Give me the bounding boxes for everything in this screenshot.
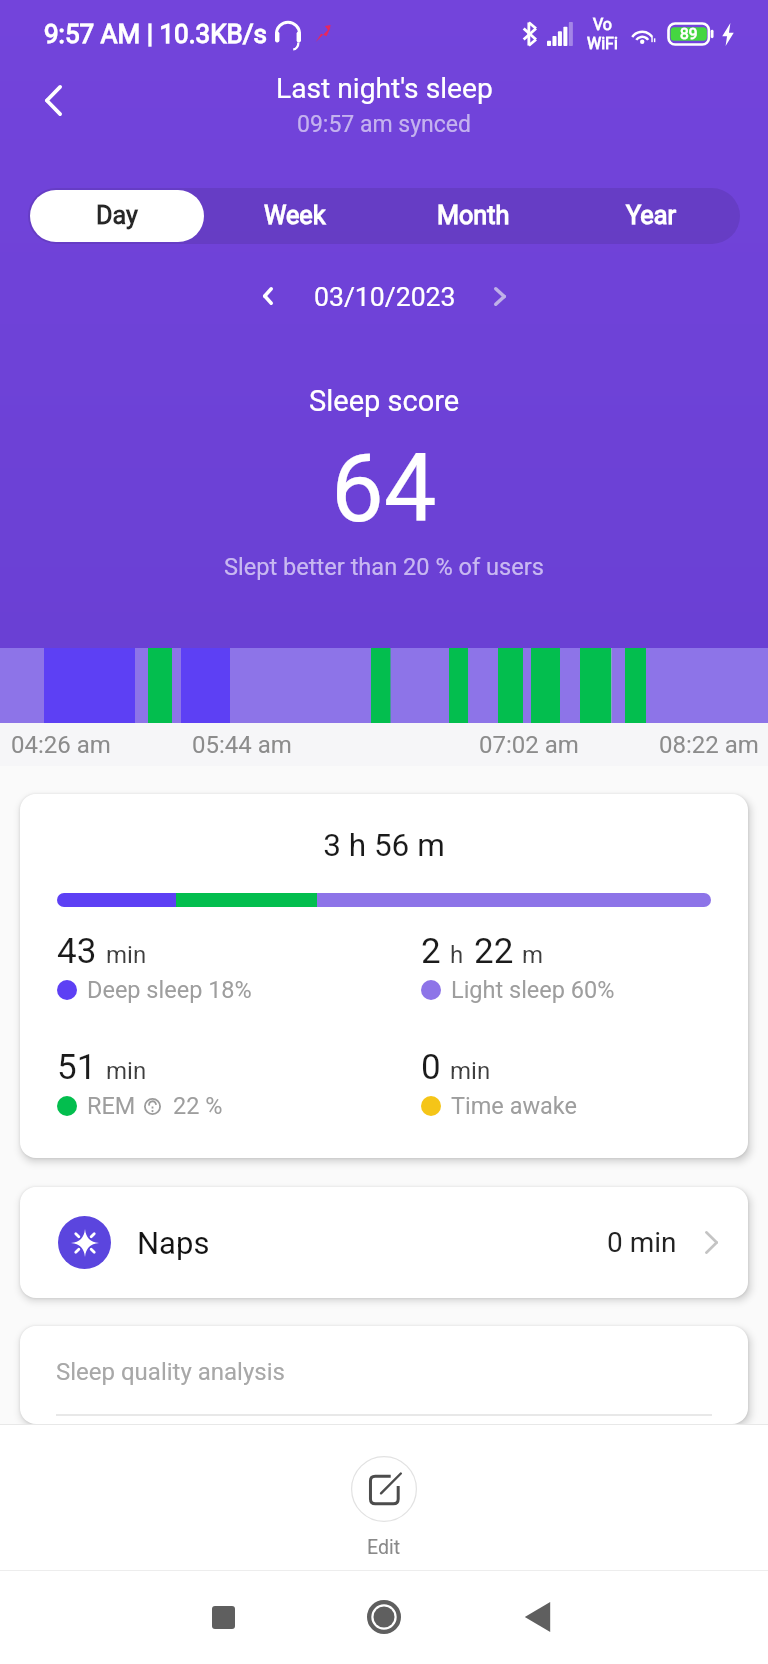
button[interactable]: Day xyxy=(30,190,204,242)
button[interactable]: Month xyxy=(386,190,560,242)
staticText: 22 % xyxy=(173,1092,223,1120)
staticText: 51 xyxy=(57,1047,97,1088)
staticText: Last night's sleep xyxy=(276,72,493,105)
button[interactable]: Back xyxy=(5,52,101,148)
staticText: Vo xyxy=(593,15,612,34)
staticText: Edit xyxy=(367,1536,401,1559)
staticText: Slept better than 20 % of users xyxy=(224,553,544,581)
staticText: Light sleep 60% xyxy=(451,976,615,1004)
button[interactable]: Year xyxy=(564,190,738,242)
button[interactable]: Back xyxy=(497,1570,593,1664)
staticText: 9:57 AM | 10.3KB/s xyxy=(44,19,267,49)
button[interactable]: Home xyxy=(336,1570,432,1664)
staticText: 64 xyxy=(331,434,437,544)
staticText: Sleep quality analysis xyxy=(56,1358,285,1386)
button[interactable]: Naps xyxy=(20,1187,748,1298)
button[interactable]: Week xyxy=(208,190,382,242)
staticText: min xyxy=(106,941,147,969)
staticText: 0 xyxy=(421,1047,441,1088)
staticText: 0 min xyxy=(607,1226,677,1259)
button[interactable]: Previous day xyxy=(238,266,298,326)
staticText: 08:22 am xyxy=(659,731,759,759)
staticText: Day xyxy=(96,201,138,231)
staticText: Time awake xyxy=(451,1092,578,1120)
staticText: Month xyxy=(437,201,510,231)
staticText: Naps xyxy=(137,1225,210,1261)
staticText: 07:02 am xyxy=(479,731,579,759)
staticText: 03/10/2023 xyxy=(314,281,456,312)
staticText: 3 h 56 m xyxy=(20,827,748,864)
staticText: min xyxy=(106,1057,147,1085)
staticText: Week xyxy=(264,201,326,231)
button[interactable]: Recent apps xyxy=(175,1570,271,1664)
staticText: 22 xyxy=(474,931,514,972)
button[interactable]: Edit xyxy=(351,1456,417,1559)
staticText: WiFi xyxy=(587,34,618,53)
staticText: 04:26 am xyxy=(11,731,111,759)
staticText: 2 xyxy=(421,931,441,972)
button[interactable]: Next day xyxy=(470,266,530,326)
staticText: Sleep score xyxy=(309,384,460,418)
staticText: 43 xyxy=(57,931,97,972)
staticText: h xyxy=(450,941,464,969)
staticText: m xyxy=(522,941,544,969)
staticText: 09:57 am synced xyxy=(297,111,472,138)
staticText: min xyxy=(450,1057,491,1085)
staticText: REM xyxy=(87,1092,136,1120)
staticText: Deep sleep 18% xyxy=(87,976,252,1004)
staticText: Year xyxy=(626,201,676,231)
staticText: 05:44 am xyxy=(192,731,292,759)
staticText: 89 xyxy=(680,25,698,43)
